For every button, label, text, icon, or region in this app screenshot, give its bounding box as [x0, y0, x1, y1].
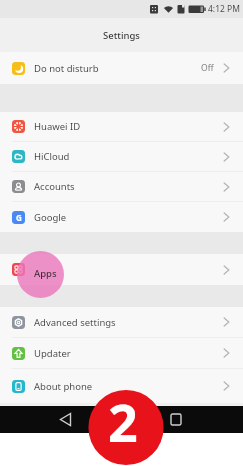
- staticText: G: [16, 212, 22, 223]
- staticText: About phone: [34, 380, 93, 393]
- button[interactable]: Do not disturb: [0, 52, 243, 84]
- staticText: Huawei ID: [34, 120, 81, 133]
- staticText: Advanced settings: [34, 316, 116, 329]
- button[interactable]: HiCloud: [0, 142, 243, 172]
- button[interactable]: G: [0, 202, 243, 232]
- staticText: 4:12 PM: [208, 3, 240, 15]
- staticText: 2: [108, 386, 138, 448]
- button[interactable]: Accounts: [0, 172, 243, 202]
- button[interactable]: Huawei ID: [0, 112, 243, 142]
- staticText: Off: [201, 62, 214, 74]
- button[interactable]: Advanced settings: [0, 307, 243, 338]
- staticText: Accounts: [34, 180, 75, 193]
- button[interactable]: About phone: [0, 369, 243, 403]
- staticText: Settings: [103, 29, 140, 42]
- staticText: Updater: [34, 347, 71, 360]
- staticText: Google: [34, 211, 67, 224]
- staticText: HiCloud: [34, 150, 70, 163]
- button[interactable]: [0, 254, 243, 285]
- staticText: Do not disturb: [34, 62, 99, 75]
- staticText: Apps: [34, 267, 57, 280]
- button[interactable]: Updater: [0, 338, 243, 369]
